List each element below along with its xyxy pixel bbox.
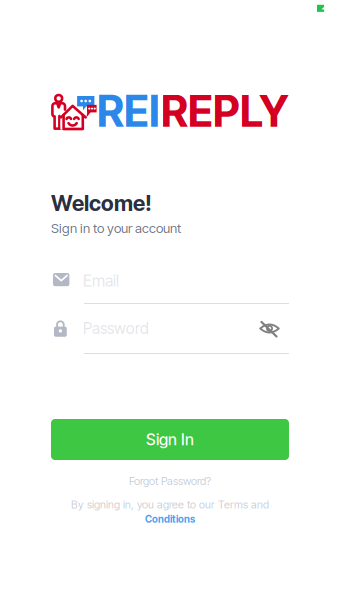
button[interactable]: Forgot Password? (51, 474, 289, 488)
staticText: Password (83, 319, 149, 338)
button[interactable]: Show password (255, 317, 281, 340)
staticText: Email (83, 271, 119, 290)
staticText: Sign In (146, 430, 194, 449)
staticText: By signing in, you agree to our Terms an… (71, 498, 269, 511)
staticText: Forgot Password? (129, 474, 211, 488)
staticText: REI (97, 85, 160, 137)
staticText: REPLY (161, 85, 289, 137)
staticText: Welcome! (51, 190, 152, 216)
staticText: Sign in to your account (51, 220, 181, 236)
staticText: Conditions (145, 513, 195, 525)
button[interactable]: Sign In (51, 419, 289, 460)
